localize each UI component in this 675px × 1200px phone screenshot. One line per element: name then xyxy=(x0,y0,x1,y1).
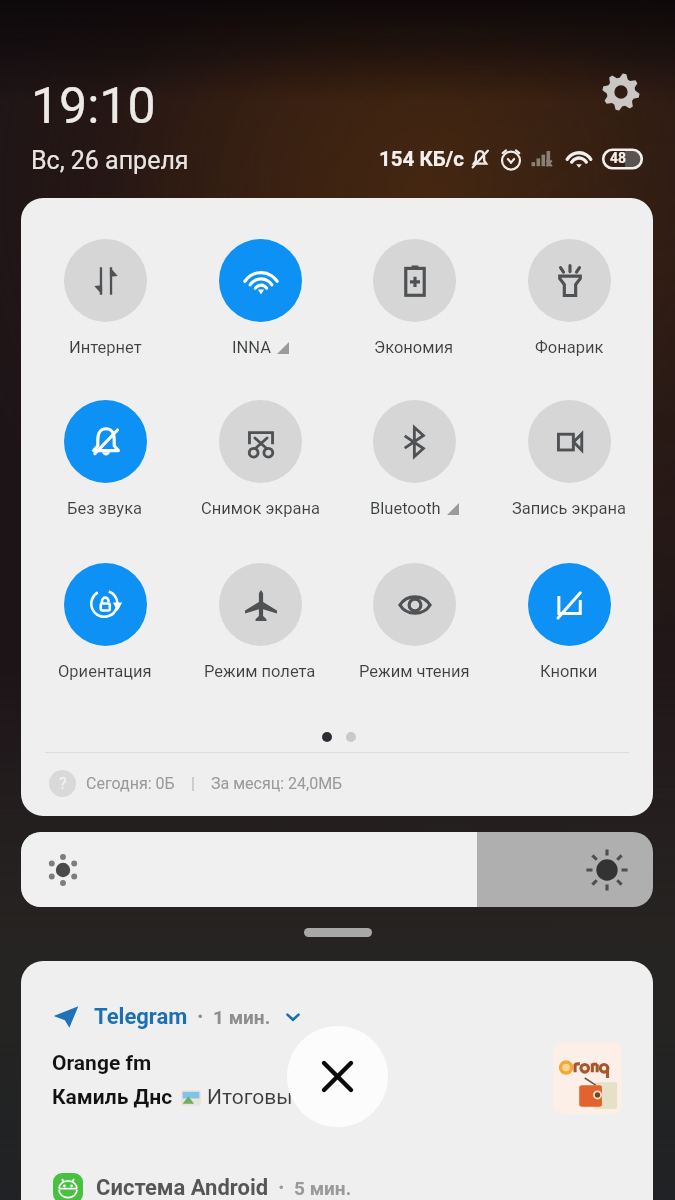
staticText: ? xyxy=(59,774,67,793)
staticText: Система Android xyxy=(96,1175,269,1200)
button[interactable]: Интернет xyxy=(34,239,176,357)
button[interactable]: Режим полета xyxy=(189,563,331,681)
staticText: Сегодня: 0Б xyxy=(86,774,175,793)
button[interactable]: Help xyxy=(49,770,76,797)
button[interactable]: Bluetooth xyxy=(343,400,485,518)
staticText: Вс, 26 апреля xyxy=(31,146,189,175)
button[interactable]: Снимок экрана xyxy=(189,400,331,518)
button[interactable] xyxy=(21,832,653,907)
button[interactable]: Режим чтения xyxy=(343,563,485,681)
staticText: Камиль Днс xyxy=(52,1085,173,1110)
staticText: Ориентация xyxy=(58,662,152,681)
staticText: 154 КБ/c xyxy=(379,147,464,171)
staticText: 1 мин. xyxy=(213,1006,271,1028)
staticText: Bluetooth xyxy=(370,499,441,518)
button[interactable]: Потянуть xyxy=(304,928,372,937)
button[interactable]: Фонарик xyxy=(498,239,640,357)
button[interactable]: Запись экрана xyxy=(498,400,640,518)
staticText: Итоговы xyxy=(207,1085,293,1110)
staticText: Снимок экрана xyxy=(201,499,320,518)
staticText: · xyxy=(197,1004,204,1030)
staticText: Режим чтения xyxy=(359,662,470,681)
staticText: 5 мин. xyxy=(294,1177,352,1199)
staticText: Кнопки xyxy=(540,662,598,681)
staticText: Orange fm xyxy=(52,1051,152,1076)
button[interactable]: Ориентация xyxy=(34,563,176,681)
staticText: INNA xyxy=(232,338,271,357)
staticText: За месяц: 24,0МБ xyxy=(211,774,343,793)
button[interactable]: INNA xyxy=(189,239,331,357)
staticText: Интернет xyxy=(69,338,142,357)
button[interactable]: Кнопки xyxy=(498,563,640,681)
button[interactable]: Очистить уведомления xyxy=(287,1026,388,1127)
staticText: Экономия xyxy=(374,338,454,357)
button[interactable]: Экономия xyxy=(343,239,485,357)
staticText: 19:10 xyxy=(31,77,156,136)
button[interactable]: Настройки xyxy=(594,65,648,119)
staticText: Без звука xyxy=(67,499,143,518)
staticText: 48 xyxy=(610,150,627,166)
staticText: Режим полета xyxy=(204,662,316,681)
staticText: · xyxy=(278,1175,285,1200)
staticText: Фонарик xyxy=(535,338,604,357)
button[interactable]: Без звука xyxy=(34,400,176,518)
button[interactable]: Telegram xyxy=(21,961,653,1200)
staticText: Telegram xyxy=(94,1004,188,1030)
staticText: Запись экрана xyxy=(512,499,627,518)
staticText: | xyxy=(191,774,195,793)
